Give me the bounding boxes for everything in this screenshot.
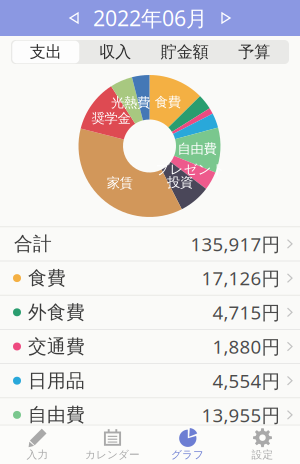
- staticText: カレンダー: [85, 448, 140, 461]
- staticText: 支出: [30, 42, 62, 62]
- button[interactable]: 入力: [0, 425, 75, 464]
- staticText: 1,880円: [212, 334, 280, 359]
- staticText: 交通費: [28, 335, 85, 358]
- staticText: 貯金額: [161, 42, 209, 62]
- staticText: 自由費: [28, 403, 85, 426]
- staticText: 収入: [99, 42, 131, 62]
- staticText: 135,917円: [190, 231, 280, 256]
- button[interactable]: 予算: [219, 40, 289, 64]
- staticText: 投資: [167, 174, 193, 191]
- button[interactable]: グラフ: [150, 425, 225, 464]
- button[interactable]: カレンダー: [75, 425, 150, 464]
- button[interactable]: 交通費: [0, 330, 300, 363]
- staticText: 設定: [251, 448, 273, 461]
- button[interactable]: 支出: [11, 40, 80, 64]
- staticText: 予算: [238, 42, 270, 62]
- button[interactable]: 外食費: [0, 296, 300, 329]
- button[interactable]: 食費: [0, 261, 300, 295]
- staticText: 合計: [14, 232, 52, 255]
- button[interactable]: 収入: [80, 40, 150, 64]
- button[interactable]: 次の月: [216, 7, 236, 29]
- button[interactable]: 設定: [225, 425, 300, 464]
- button[interactable]: 合計: [0, 227, 300, 261]
- staticText: 食費: [28, 267, 66, 289]
- staticText: 2022年06月: [93, 4, 207, 32]
- staticText: 自由費: [177, 141, 216, 157]
- staticText: 4,554円: [212, 368, 280, 393]
- staticText: 光熱費: [111, 94, 150, 111]
- button[interactable]: 前の月: [64, 7, 84, 29]
- staticText: 入力: [26, 448, 48, 461]
- staticText: 食費: [155, 94, 181, 110]
- staticText: 13,955円: [201, 402, 280, 427]
- staticText: グラフ: [171, 448, 204, 461]
- staticText: 17,126円: [201, 266, 280, 290]
- button[interactable]: 貯金額: [150, 40, 219, 64]
- staticText: 4,715円: [212, 300, 280, 325]
- staticText: 外食費: [28, 301, 85, 324]
- staticText: 奨学金: [91, 110, 130, 126]
- staticText: 家賃: [107, 175, 133, 191]
- staticText: 日用品: [28, 369, 85, 392]
- button[interactable]: 日用品: [0, 364, 300, 397]
- staticText: プレゼント: [156, 161, 226, 178]
- button[interactable]: 自由費: [0, 398, 300, 432]
